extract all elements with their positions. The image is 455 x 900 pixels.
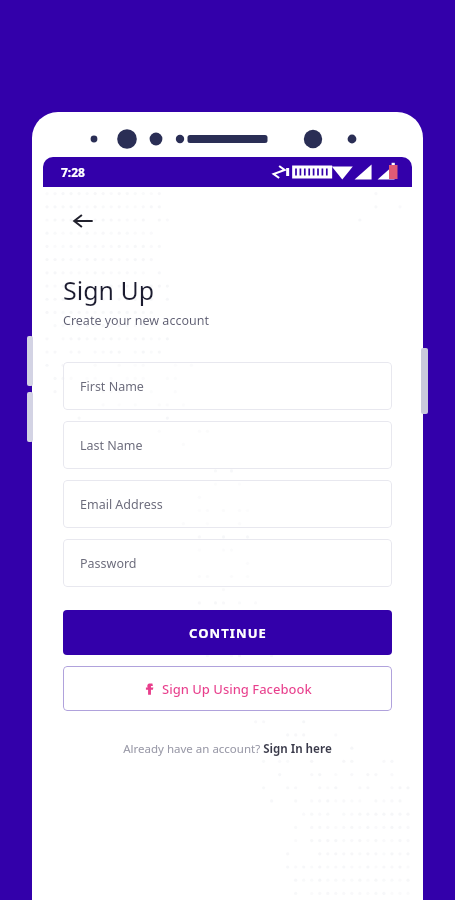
- button[interactable]: Last Name: [63, 421, 392, 469]
- staticText: First Name: [80, 378, 144, 395]
- staticText: Already have an account? Sign In here: [123, 741, 332, 757]
- button[interactable]: CONTINUE: [63, 610, 392, 655]
- staticText: 7:28: [61, 164, 85, 180]
- button[interactable]: Email Address: [63, 480, 392, 528]
- staticText: Last Name: [80, 437, 143, 454]
- staticText: Sign Up: [63, 273, 155, 307]
- staticText: Create your new account: [63, 312, 209, 329]
- button[interactable]: Password: [63, 539, 392, 587]
- staticText: CONTINUE: [189, 624, 267, 642]
- button[interactable]: Already have an account? Sign In here: [63, 741, 392, 757]
- staticText: Email Address: [80, 496, 163, 513]
- staticText: Password: [80, 555, 137, 572]
- staticText: Sign Up Using Facebook: [162, 680, 312, 698]
- button[interactable]: Back: [63, 201, 103, 241]
- button[interactable]: First Name: [63, 362, 392, 410]
- button[interactable]: Sign Up Using Facebook: [63, 666, 392, 711]
